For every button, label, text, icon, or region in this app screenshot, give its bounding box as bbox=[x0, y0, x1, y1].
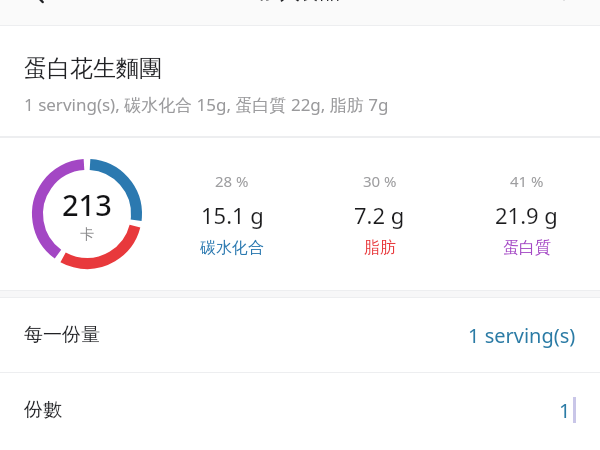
staticText: 7.2 g bbox=[354, 200, 405, 230]
button[interactable]: Back bbox=[18, 0, 62, 7]
staticText: 21.9 g bbox=[495, 200, 558, 230]
staticText: 41 % bbox=[510, 171, 544, 191]
button[interactable]: 份數 bbox=[0, 373, 600, 447]
button[interactable]: 30 % bbox=[306, 138, 453, 290]
button[interactable]: 28 % bbox=[158, 138, 306, 290]
staticText: 1 serving(s) bbox=[468, 322, 576, 349]
staticText: 份數 bbox=[24, 398, 62, 422]
staticText: 28 % bbox=[215, 171, 249, 191]
button[interactable]: 41 % bbox=[453, 138, 600, 290]
staticText: 卡 bbox=[80, 226, 94, 244]
staticText: 1 bbox=[559, 397, 571, 424]
staticText: 碳水化合 bbox=[200, 238, 264, 258]
staticText: 30 % bbox=[363, 171, 397, 191]
staticText: 每一份量 bbox=[24, 323, 100, 347]
staticText: 1 serving(s), 碳水化合 15g, 蛋白質 22g, 脂肪 7g bbox=[24, 93, 389, 116]
staticText: 蛋白質 bbox=[503, 238, 551, 258]
staticText: 213 bbox=[62, 185, 112, 224]
staticText: 蛋白花生麵團 bbox=[24, 54, 162, 83]
staticText: 15.1 g bbox=[201, 200, 264, 230]
button[interactable]: 蛋白花生麵團 bbox=[0, 26, 600, 136]
button[interactable]: 每一份量 bbox=[0, 298, 600, 372]
staticText: 加入食品 bbox=[260, 0, 340, 5]
staticText: 脂肪 bbox=[364, 238, 396, 258]
